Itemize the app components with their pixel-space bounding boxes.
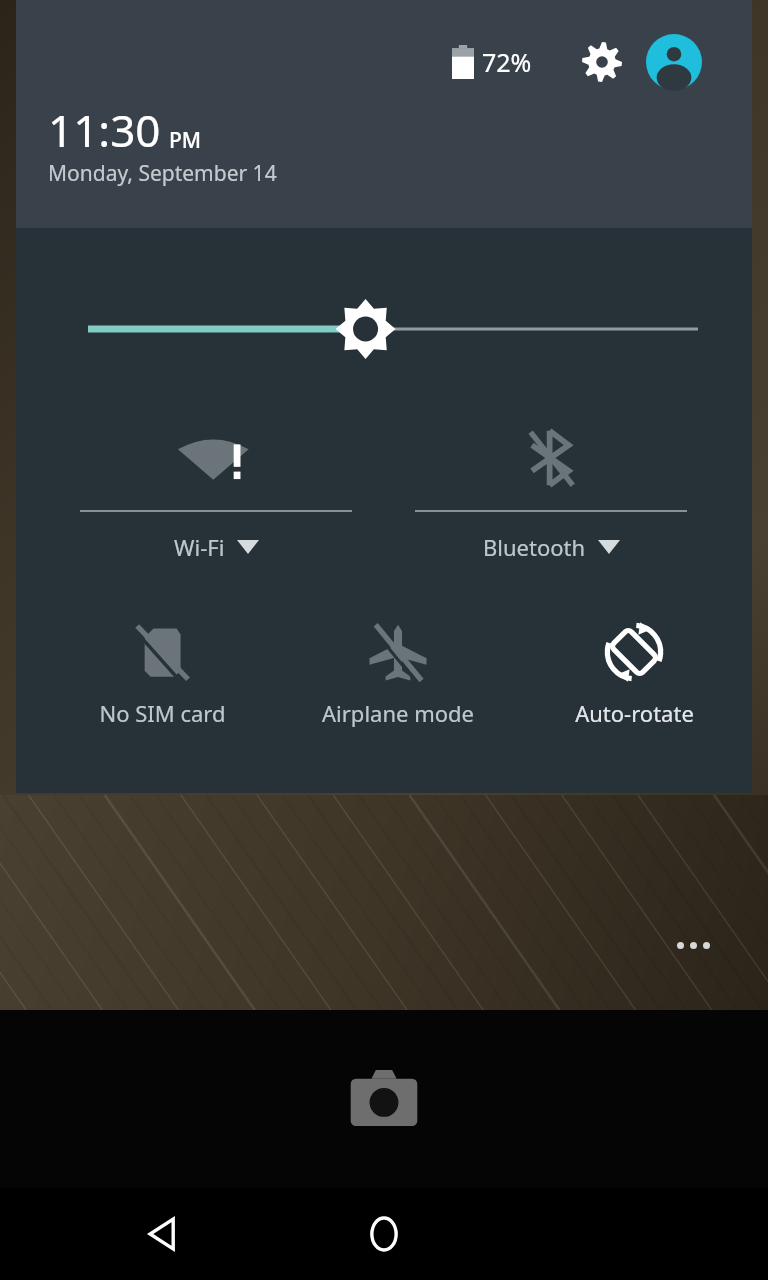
staticText: PM [169, 126, 202, 155]
staticText: Airplane mode [322, 698, 474, 728]
button[interactable]: Airplane mode [270, 606, 526, 756]
button[interactable]: Battery 72 percent [452, 45, 532, 79]
staticText: 11:30 [48, 100, 161, 160]
staticText: Bluetooth [483, 532, 586, 562]
staticText: 72% [482, 45, 532, 79]
button[interactable]: Bluetooth [415, 406, 687, 582]
staticText: Auto-rotate [575, 698, 694, 728]
button[interactable]: Camera [344, 1058, 424, 1138]
button[interactable]: Auto-rotate [506, 606, 762, 756]
button[interactable]: Wi-Fi [80, 406, 352, 582]
staticText: No SIM card [99, 698, 226, 728]
button[interactable]: No SIM card [34, 606, 290, 756]
button[interactable]: More options [668, 930, 718, 960]
button[interactable]: Back [118, 1188, 208, 1280]
button[interactable]: Brightness [56, 286, 712, 372]
staticText: Wi-Fi [174, 532, 225, 562]
button[interactable]: Home [339, 1188, 429, 1280]
button[interactable]: Settings [574, 34, 630, 90]
staticText: Monday, September 14 [48, 159, 277, 188]
button[interactable]: User profile [646, 34, 702, 90]
